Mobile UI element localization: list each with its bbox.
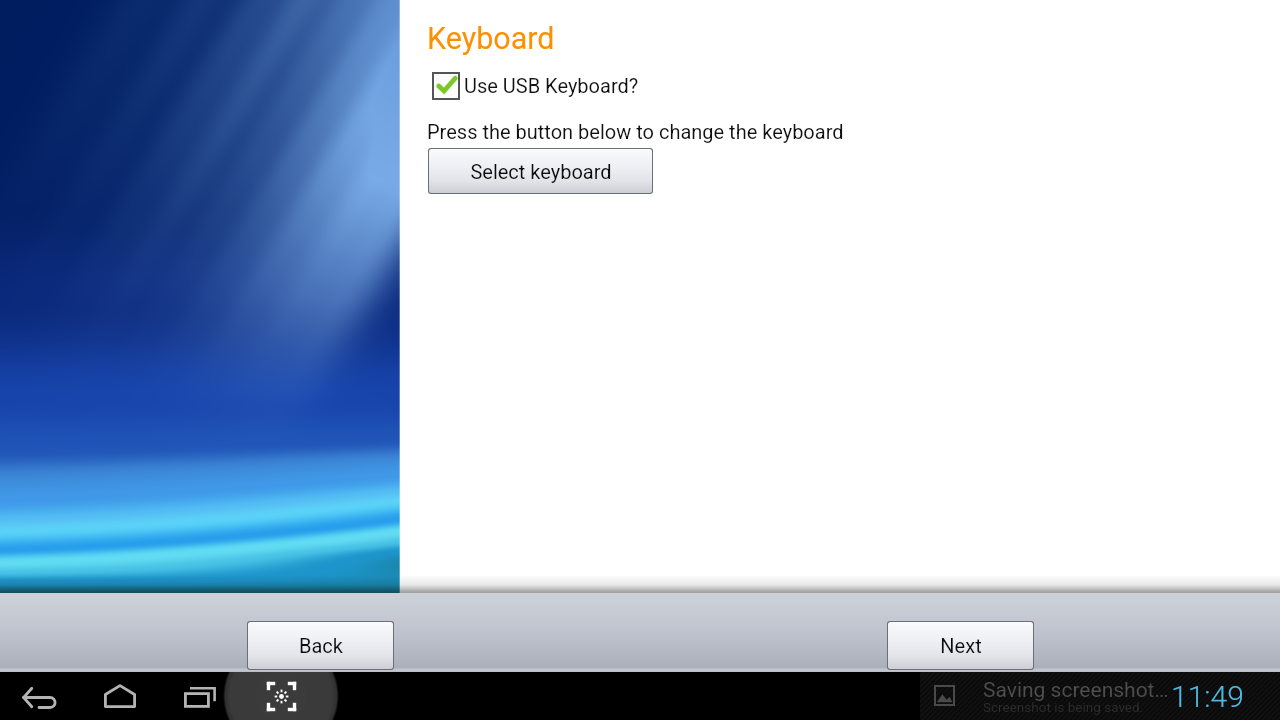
staticText: Back — [299, 634, 343, 657]
staticText: Screenshot is being saved. — [983, 699, 1144, 715]
staticText: Use USB Keyboard? — [464, 74, 639, 97]
staticText: 11:49 — [1171, 679, 1244, 714]
button[interactable]: Use USB Keyboard checkbox — [432, 72, 460, 100]
button[interactable]: Recent apps — [170, 672, 230, 720]
staticText: Press the button below to change the key… — [427, 120, 844, 143]
staticText: Saving screenshot… — [983, 678, 1169, 703]
button[interactable]: Home — [90, 672, 150, 720]
button[interactable]: Next — [888, 622, 1033, 669]
staticText: Next — [940, 634, 982, 657]
button[interactable]: Saving screenshot… — [920, 672, 1280, 720]
staticText: Keyboard — [427, 21, 555, 57]
button[interactable]: Screenshot — [251, 672, 311, 720]
button[interactable]: Back — [10, 672, 70, 720]
button[interactable]: Back — [248, 622, 393, 669]
staticText: Select keyboard — [470, 160, 612, 183]
button[interactable]: Select keyboard — [429, 149, 652, 193]
